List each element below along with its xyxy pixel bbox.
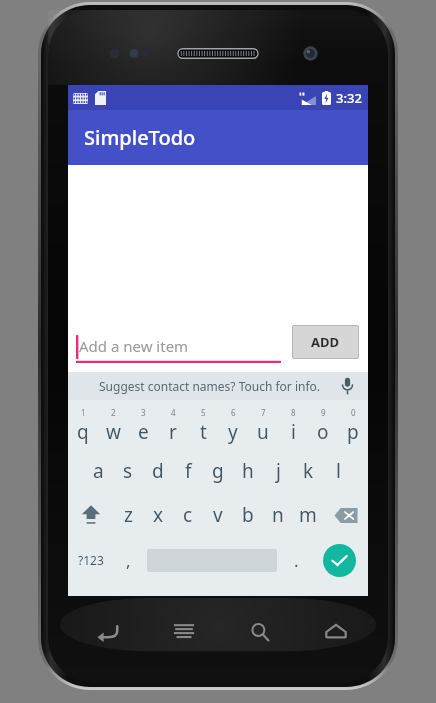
staticText: 1 (81, 407, 86, 418)
staticText: j (276, 458, 281, 484)
button[interactable]: Backspace (323, 493, 368, 537)
button[interactable]: l (323, 449, 353, 493)
staticText: Add a new item (79, 336, 189, 356)
staticText: n (272, 502, 284, 528)
button[interactable]: 7 (248, 403, 278, 449)
staticText: r (169, 419, 177, 445)
staticText: 3 (141, 407, 146, 418)
staticText: f (185, 458, 192, 484)
button[interactable]: Home (310, 617, 362, 647)
button[interactable] (143, 537, 281, 583)
button[interactable]: . (281, 537, 311, 583)
button[interactable]: s (113, 449, 143, 493)
button[interactable]: c (173, 493, 203, 537)
button[interactable]: 0 (338, 403, 368, 449)
staticText: 2 (111, 407, 116, 418)
staticText: 4 (171, 407, 176, 418)
staticText: 6 (231, 407, 236, 418)
button[interactable]: 3 (128, 403, 158, 449)
staticText: 0 (351, 407, 356, 418)
button[interactable]: v (203, 493, 233, 537)
button[interactable]: m (293, 493, 323, 537)
button[interactable]: Search (234, 617, 286, 647)
staticText: s (123, 458, 133, 484)
staticText: x (153, 502, 164, 528)
button[interactable]: Menu (158, 617, 210, 647)
button[interactable]: 8 (278, 403, 308, 449)
staticText: y (228, 419, 238, 445)
staticText: z (124, 502, 133, 528)
button[interactable]: 1 (68, 403, 98, 449)
button[interactable]: ?123 (68, 537, 113, 583)
button[interactable]: x (143, 493, 173, 537)
staticText: 7 (261, 407, 266, 418)
button[interactable]: ADD (292, 325, 359, 359)
staticText: h (242, 458, 254, 484)
staticText: l (336, 458, 341, 484)
staticText: SimpleTodo (84, 124, 196, 151)
staticText: i (291, 419, 296, 445)
staticText: v (213, 502, 223, 528)
staticText: 3:32 (336, 89, 362, 107)
button[interactable]: n (263, 493, 293, 537)
button[interactable]: k (293, 449, 323, 493)
button[interactable]: z (113, 493, 143, 537)
button[interactable]: Add a new item (76, 329, 281, 363)
button[interactable]: 4 (158, 403, 188, 449)
staticText: . (294, 549, 299, 572)
staticText: w (106, 419, 121, 445)
staticText: p (347, 419, 359, 445)
button[interactable]: Voice input (336, 375, 358, 397)
staticText: g (212, 458, 224, 484)
button[interactable]: Suggest contact names? Touch for info. (68, 372, 368, 400)
staticText: d (152, 458, 164, 484)
button[interactable]: Shift (68, 493, 113, 537)
staticText: k (303, 458, 314, 484)
button[interactable]: b (233, 493, 263, 537)
button[interactable]: Enter (311, 537, 368, 583)
button[interactable]: 5 (188, 403, 218, 449)
staticText: , (126, 549, 131, 572)
staticText: a (93, 458, 104, 484)
button[interactable]: j (263, 449, 293, 493)
button[interactable]: d (143, 449, 173, 493)
staticText: c (183, 502, 193, 528)
staticText: t (200, 419, 207, 445)
button[interactable]: 9 (308, 403, 338, 449)
staticText: b (242, 502, 254, 528)
button[interactable]: , (113, 537, 143, 583)
button[interactable]: a (83, 449, 113, 493)
staticText: Suggest contact names? Touch for info. (99, 378, 321, 394)
staticText: q (77, 419, 89, 445)
staticText: 5 (201, 407, 206, 418)
button[interactable]: Back (82, 617, 134, 647)
button[interactable]: g (203, 449, 233, 493)
staticText: u (257, 419, 269, 445)
staticText: ADD (311, 333, 340, 351)
button[interactable]: f (173, 449, 203, 493)
staticText: e (138, 419, 149, 445)
staticText: 8 (291, 407, 296, 418)
button[interactable]: 6 (218, 403, 248, 449)
staticText: 9 (321, 407, 326, 418)
staticText: o (317, 419, 329, 445)
button[interactable]: h (233, 449, 263, 493)
staticText: ?123 (78, 552, 104, 568)
button[interactable]: 2 (98, 403, 128, 449)
staticText: m (299, 502, 317, 528)
